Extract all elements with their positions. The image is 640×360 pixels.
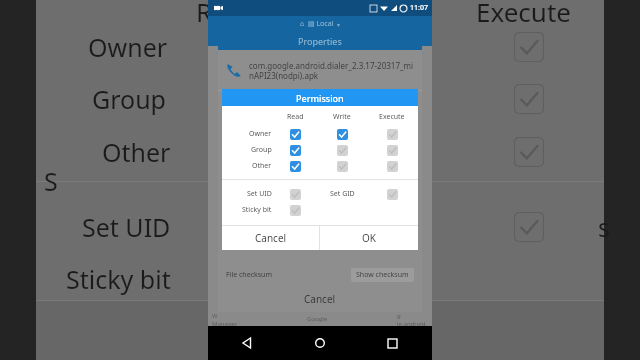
staticText: Sticky bit xyxy=(66,262,171,296)
staticText: Write xyxy=(333,112,351,122)
staticText: Execute xyxy=(379,112,405,122)
button[interactable]: Home xyxy=(310,333,330,353)
button[interactable]: Unchecked xyxy=(387,189,398,200)
staticText: Owner xyxy=(88,30,168,64)
button[interactable]: Cancel xyxy=(222,226,319,250)
button[interactable]: Checked xyxy=(337,129,348,140)
staticText: Read xyxy=(287,112,304,122)
staticText: Execute xyxy=(476,0,571,29)
staticText: s xyxy=(598,210,610,244)
button[interactable]: Checked xyxy=(290,145,301,156)
button[interactable]: Unchecked xyxy=(337,145,348,156)
button[interactable]: Unchecked xyxy=(290,189,301,200)
button[interactable]: OK xyxy=(320,226,418,250)
staticText: Cancel xyxy=(255,231,287,245)
button[interactable]: Unchecked xyxy=(337,161,348,172)
button[interactable]: Unchecked xyxy=(290,205,301,216)
button[interactable]: Permission checkbox xyxy=(514,84,544,114)
button[interactable]: Group xyxy=(222,142,418,158)
button[interactable]: Checked xyxy=(290,129,301,140)
staticText: Other xyxy=(252,161,272,171)
staticText: Group xyxy=(92,82,166,116)
button[interactable]: Cancel xyxy=(218,286,422,312)
staticText: ▾ xyxy=(337,21,341,28)
staticText: Owner xyxy=(249,129,272,139)
staticText: ⌂ xyxy=(300,20,305,28)
staticText: Google xyxy=(307,315,328,323)
button[interactable]: Permission checkbox xyxy=(212,264,242,294)
staticText: ▤ Local xyxy=(308,19,334,29)
button[interactable]: Unchecked xyxy=(387,129,398,140)
staticText: Set UID xyxy=(247,189,272,199)
staticText: Show checksum xyxy=(356,270,409,280)
staticText: S xyxy=(44,164,58,198)
staticText: OK xyxy=(362,231,376,245)
staticText: com.google.android.dialer_2.3.17-20317_m… xyxy=(249,60,416,81)
button[interactable]: Other xyxy=(222,158,418,174)
button[interactable]: Owner xyxy=(222,126,418,142)
staticText: Group xyxy=(251,145,272,155)
button[interactable]: Permission checkbox xyxy=(212,137,242,167)
staticText: Other xyxy=(102,135,171,169)
button[interactable]: Show checksum xyxy=(351,268,414,282)
button[interactable]: Permission checkbox xyxy=(212,32,242,62)
button[interactable]: Checked xyxy=(290,161,301,172)
staticText: Permission xyxy=(296,92,344,104)
button[interactable]: Permission checkbox xyxy=(514,32,544,62)
staticText: R xyxy=(196,0,213,29)
button[interactable]: Permission checkbox xyxy=(212,212,242,242)
staticText: W Manager xyxy=(212,312,238,326)
button[interactable]: Recent apps xyxy=(382,333,402,353)
button[interactable]: Back xyxy=(238,333,258,353)
button[interactable]: Unchecked xyxy=(387,161,398,172)
staticText: Properties xyxy=(298,35,342,47)
button[interactable]: Permission checkbox xyxy=(514,212,544,242)
button[interactable]: Permission checkbox xyxy=(212,84,242,114)
staticText: File checksum xyxy=(226,270,272,280)
staticText: Set GID xyxy=(330,189,355,199)
staticText: Sticky bit xyxy=(242,205,272,215)
staticText: g le.android. xyxy=(397,312,428,326)
staticText: Cancel xyxy=(304,292,336,306)
staticText: Set UID xyxy=(82,210,171,244)
button[interactable]: Unchecked xyxy=(387,145,398,156)
staticText: 11:07 xyxy=(410,3,428,13)
button[interactable]: Permission checkbox xyxy=(514,137,544,167)
